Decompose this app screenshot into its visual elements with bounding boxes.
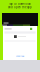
staticText: and open the app	[8, 5, 32, 9]
staticText: Tap to download	[9, 2, 31, 5]
staticText: Continue	[16, 54, 24, 57]
